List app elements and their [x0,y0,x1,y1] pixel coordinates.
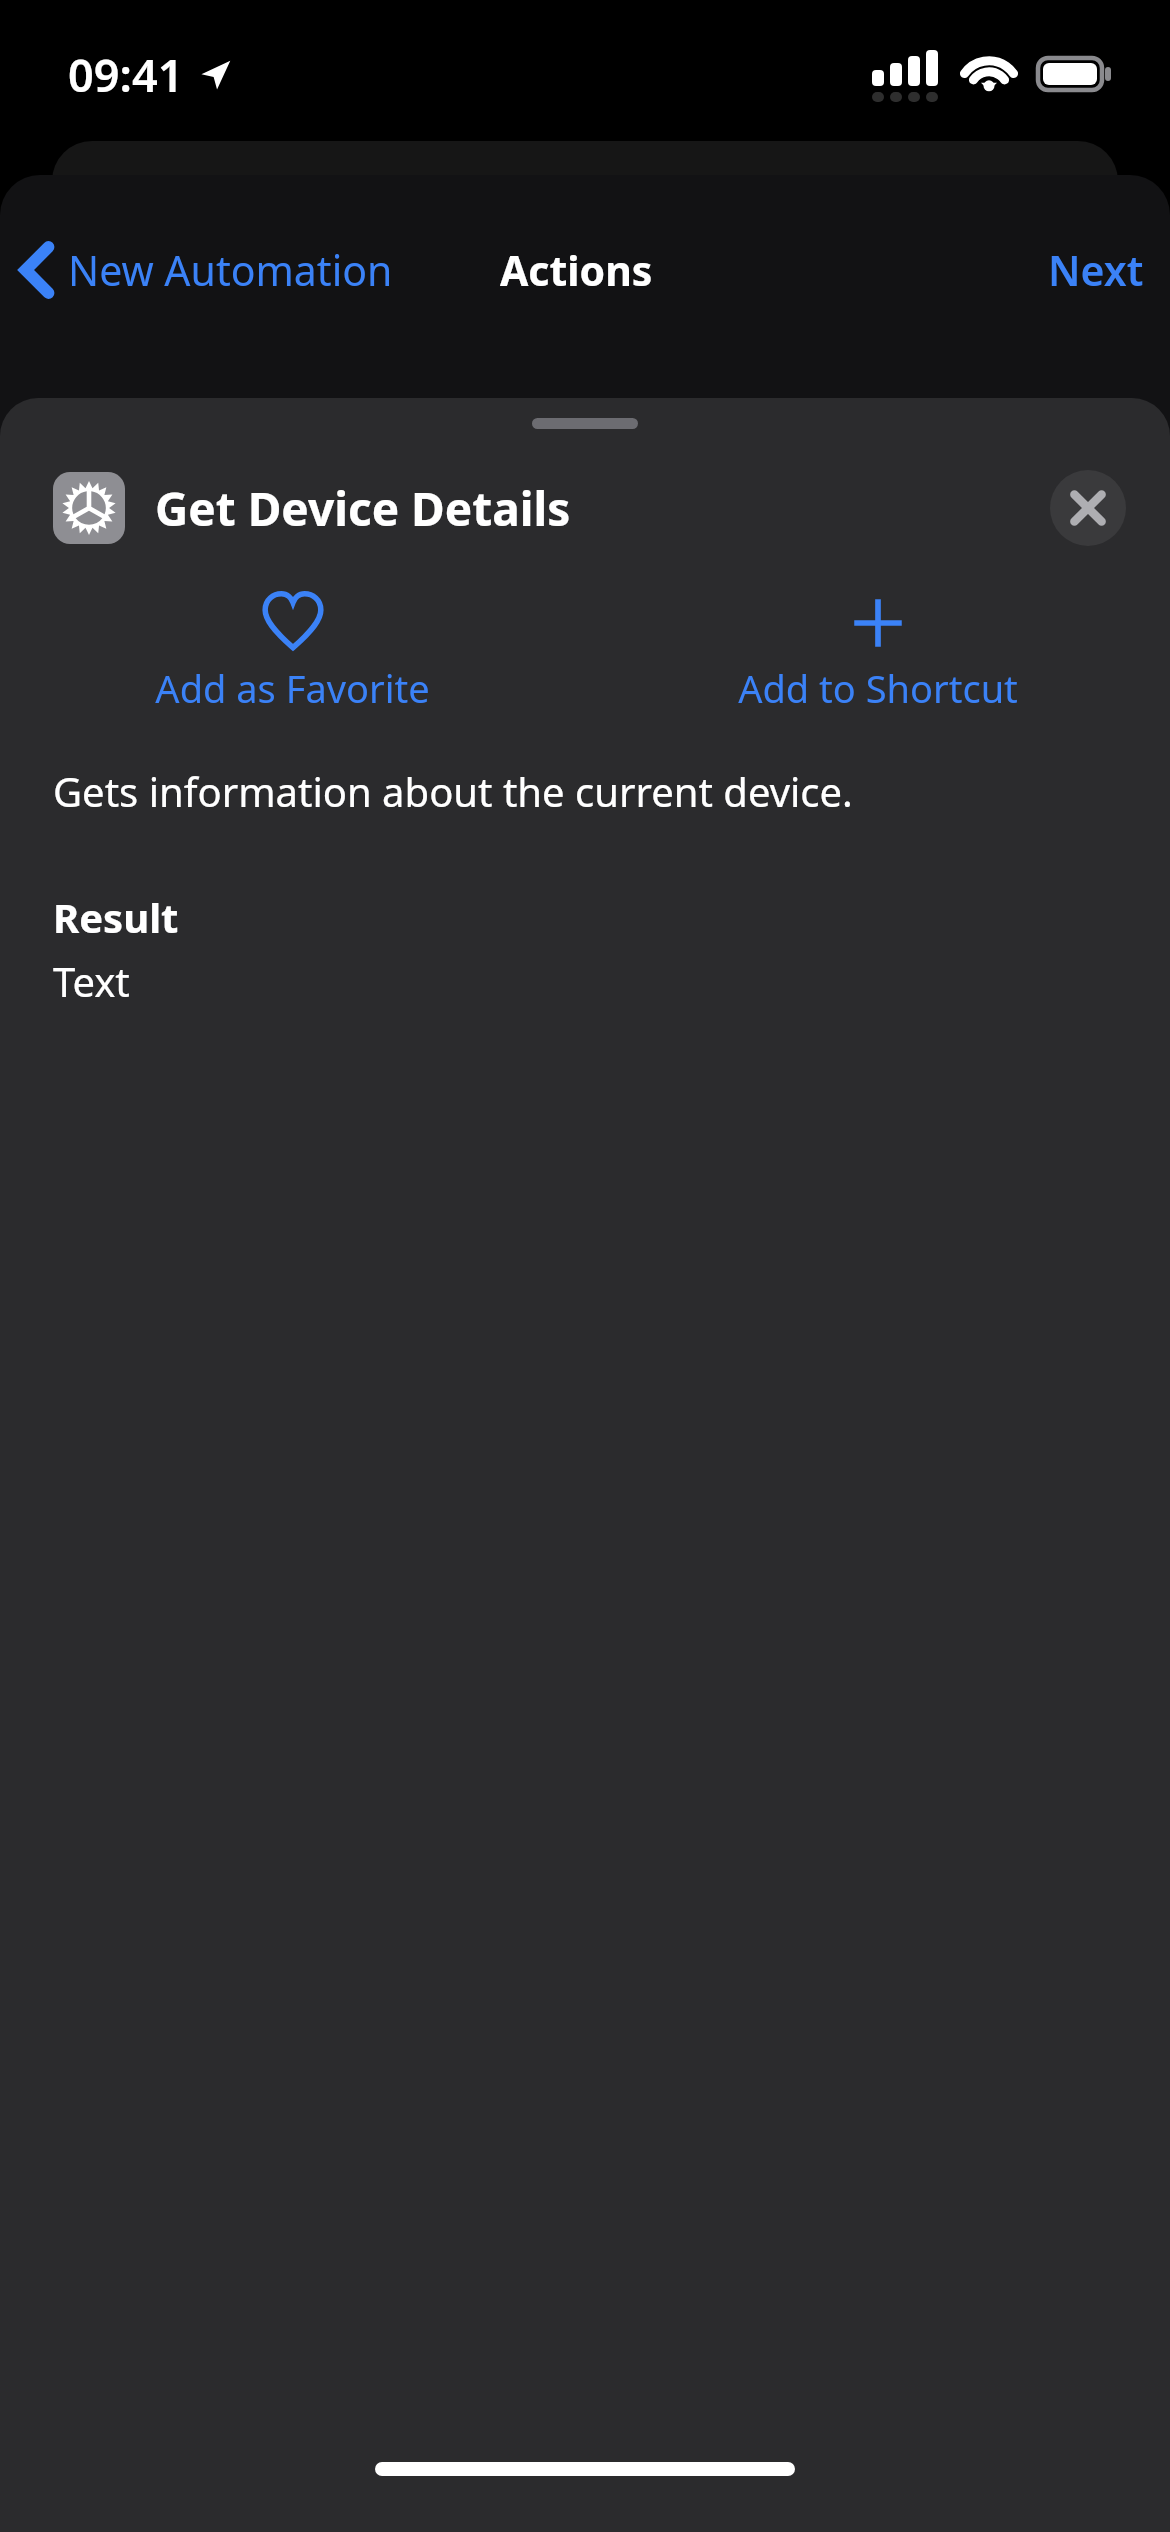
staticText: Add as Favorite [155,662,430,714]
staticText: Next [1048,242,1144,298]
staticText: Get Device Details [155,477,571,540]
button[interactable]: New Automation [0,234,403,306]
button[interactable]: Next [1022,230,1170,310]
button[interactable]: Close [1050,470,1126,546]
button[interactable]: Add as Favorite [0,578,585,724]
staticText: 09:41 [68,44,184,105]
staticText: Gets information about the current devic… [53,764,853,818]
staticText: Add to Shortcut [738,662,1018,714]
staticText: New Automation [68,242,393,298]
button[interactable]: Add to Shortcut [585,578,1170,724]
staticText: Result [53,890,179,944]
staticText: Actions [500,242,653,298]
staticText: Text [53,954,130,1008]
